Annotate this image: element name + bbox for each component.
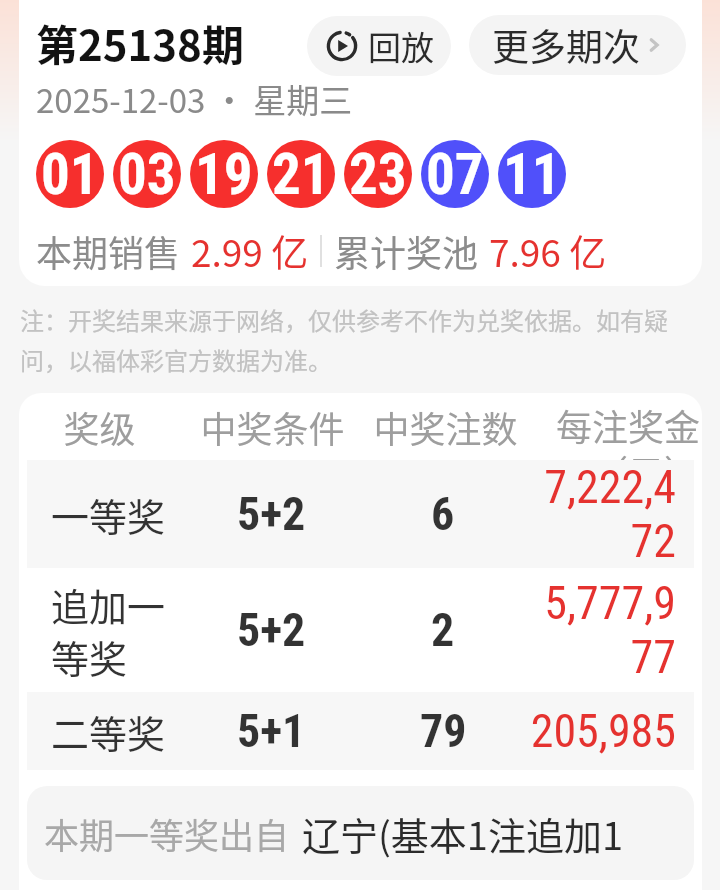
staticText: 更多期次	[492, 18, 640, 72]
staticText: 2	[431, 603, 455, 657]
staticText: 7.96 亿	[489, 224, 607, 278]
staticText: 中奖条件	[200, 401, 345, 453]
staticText: 2.99 亿	[191, 224, 309, 278]
staticText: 2025-12-03 · 星期三	[36, 75, 353, 123]
staticText: 本期一等奖出自	[44, 808, 290, 859]
staticText: 21	[272, 141, 330, 208]
staticText: 中奖注数	[373, 401, 518, 453]
staticText: 本期销售	[36, 225, 181, 277]
button[interactable]: 更多期次	[469, 15, 686, 75]
staticText: 累计奖池	[334, 225, 479, 277]
staticText: 奖级	[63, 401, 136, 453]
staticText: 79	[420, 704, 467, 758]
staticText: 5,777,977	[525, 576, 676, 684]
staticText: 第25138期	[36, 12, 244, 73]
staticText: 7,222,472	[525, 460, 676, 568]
staticText: 6	[431, 487, 455, 541]
staticText: 01	[41, 141, 99, 208]
staticText: 注：开奖结果来源于网络，仅供参考不作为兑奖依据。如有疑问，以福体彩官方数据为准。	[20, 302, 676, 377]
staticText: 5+2	[237, 603, 306, 657]
staticText: 23	[349, 141, 407, 208]
staticText: 5+1	[237, 704, 306, 758]
staticText: 回放	[368, 22, 434, 70]
staticText: 19	[195, 141, 253, 208]
staticText: 11	[503, 141, 561, 208]
other: More periods	[644, 35, 664, 55]
staticText: 205,985	[525, 704, 676, 758]
staticText: 03	[118, 141, 176, 208]
button[interactable]: 回放	[307, 16, 451, 76]
staticText: 二等奖	[51, 704, 166, 759]
staticText: 每注奖金（元）	[540, 399, 700, 466]
staticText: 一等奖	[51, 487, 166, 542]
button[interactable]: 本期一等奖出自	[27, 786, 694, 880]
staticText: 5+2	[237, 487, 306, 541]
staticText: 追加一等奖	[51, 577, 179, 684]
staticText: 07	[426, 141, 484, 208]
staticText: 辽宁(基本1注追加1注...	[302, 806, 678, 861]
